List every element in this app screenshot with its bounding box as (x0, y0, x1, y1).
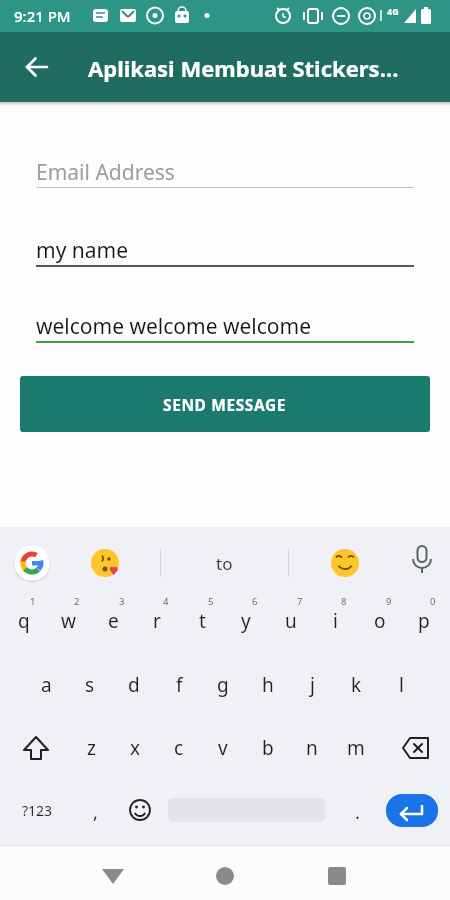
staticText: i (333, 608, 338, 634)
staticText: z (87, 735, 96, 761)
button[interactable]: y (224, 605, 268, 637)
button[interactable]: r (135, 605, 179, 637)
staticText: 3 (119, 595, 125, 608)
staticText: o (374, 608, 386, 634)
staticText: Email Address (36, 158, 175, 186)
staticText: 5 (208, 595, 214, 608)
staticText: my name (36, 236, 129, 264)
staticText: 8 (341, 595, 347, 608)
button[interactable]: l (379, 669, 423, 701)
button[interactable] (402, 539, 442, 587)
staticText: m (347, 735, 365, 761)
staticText: b (262, 735, 274, 761)
button[interactable]: c (157, 732, 201, 764)
button[interactable]: n (290, 732, 334, 764)
button[interactable]: to (161, 537, 288, 589)
button[interactable] (386, 794, 438, 827)
staticText: t (199, 608, 206, 634)
button[interactable]: k (334, 669, 378, 701)
button[interactable]: e (91, 605, 135, 637)
staticText: k (351, 672, 362, 698)
button[interactable] (16, 46, 58, 88)
button[interactable]: i (313, 605, 357, 637)
staticText: h (262, 672, 274, 698)
staticText: p (418, 608, 430, 634)
staticText: 9:21 PM (14, 6, 71, 26)
button[interactable]: my name (36, 236, 414, 270)
staticText: , (93, 800, 98, 825)
staticText: v (218, 735, 228, 761)
staticText: 6 (252, 595, 258, 608)
button[interactable]: Email Address (36, 158, 414, 192)
button[interactable]: a (24, 669, 68, 701)
button[interactable]: b (246, 732, 290, 764)
staticText: s (85, 672, 95, 698)
staticText: j (310, 672, 315, 698)
button[interactable] (85, 543, 125, 583)
button[interactable] (314, 850, 360, 896)
staticText: g (217, 672, 229, 698)
staticText: x (130, 735, 141, 761)
staticText: 4G (387, 5, 399, 17)
staticText: l (399, 672, 404, 698)
button[interactable]: w (46, 605, 90, 637)
staticText: SEND MESSAGE (163, 394, 287, 415)
button[interactable]: m (334, 732, 378, 764)
button[interactable]: u (269, 605, 313, 637)
staticText: 1 (30, 595, 36, 608)
staticText: u (285, 608, 297, 634)
staticText: e (108, 608, 119, 634)
button[interactable]: SEND MESSAGE (20, 376, 430, 432)
staticText: 9 (386, 595, 392, 608)
staticText: n (306, 735, 318, 761)
button[interactable]: d (112, 669, 156, 701)
button[interactable]: z (69, 732, 113, 764)
button[interactable]: s (68, 669, 112, 701)
staticText: . (355, 800, 360, 825)
staticText: d (128, 672, 140, 698)
button[interactable]: p (402, 605, 446, 637)
button[interactable] (325, 543, 365, 583)
button[interactable] (202, 850, 248, 896)
staticText: 7 (297, 595, 303, 608)
staticText: welcome welcome welcome (36, 312, 312, 340)
button[interactable]: welcome welcome welcome (36, 312, 414, 346)
button[interactable] (90, 850, 136, 896)
button[interactable] (14, 726, 58, 770)
staticText: q (18, 608, 30, 634)
button[interactable]: h (246, 669, 290, 701)
button[interactable]: o (358, 605, 402, 637)
staticText: Aplikasi Membuat Stickers… (88, 53, 399, 83)
staticText: ?123 (22, 801, 53, 820)
button[interactable] (394, 726, 438, 770)
staticText: y (241, 608, 251, 634)
button[interactable]: f (157, 669, 201, 701)
button[interactable]: q (2, 605, 46, 637)
button[interactable]: j (290, 669, 334, 701)
staticText: f (176, 672, 183, 698)
staticText: 0 (430, 595, 436, 608)
staticText: w (61, 608, 76, 634)
staticText: to (216, 552, 233, 575)
staticText: 4 (163, 595, 169, 608)
button[interactable] (120, 790, 160, 830)
staticText: c (174, 735, 184, 761)
button[interactable]: g (201, 669, 245, 701)
staticText: 2 (74, 595, 80, 608)
button[interactable]: v (201, 732, 245, 764)
button[interactable]: x (113, 732, 157, 764)
staticText: a (41, 672, 52, 698)
button[interactable] (8, 537, 56, 585)
staticText: r (153, 608, 161, 634)
button[interactable]: t (180, 605, 224, 637)
